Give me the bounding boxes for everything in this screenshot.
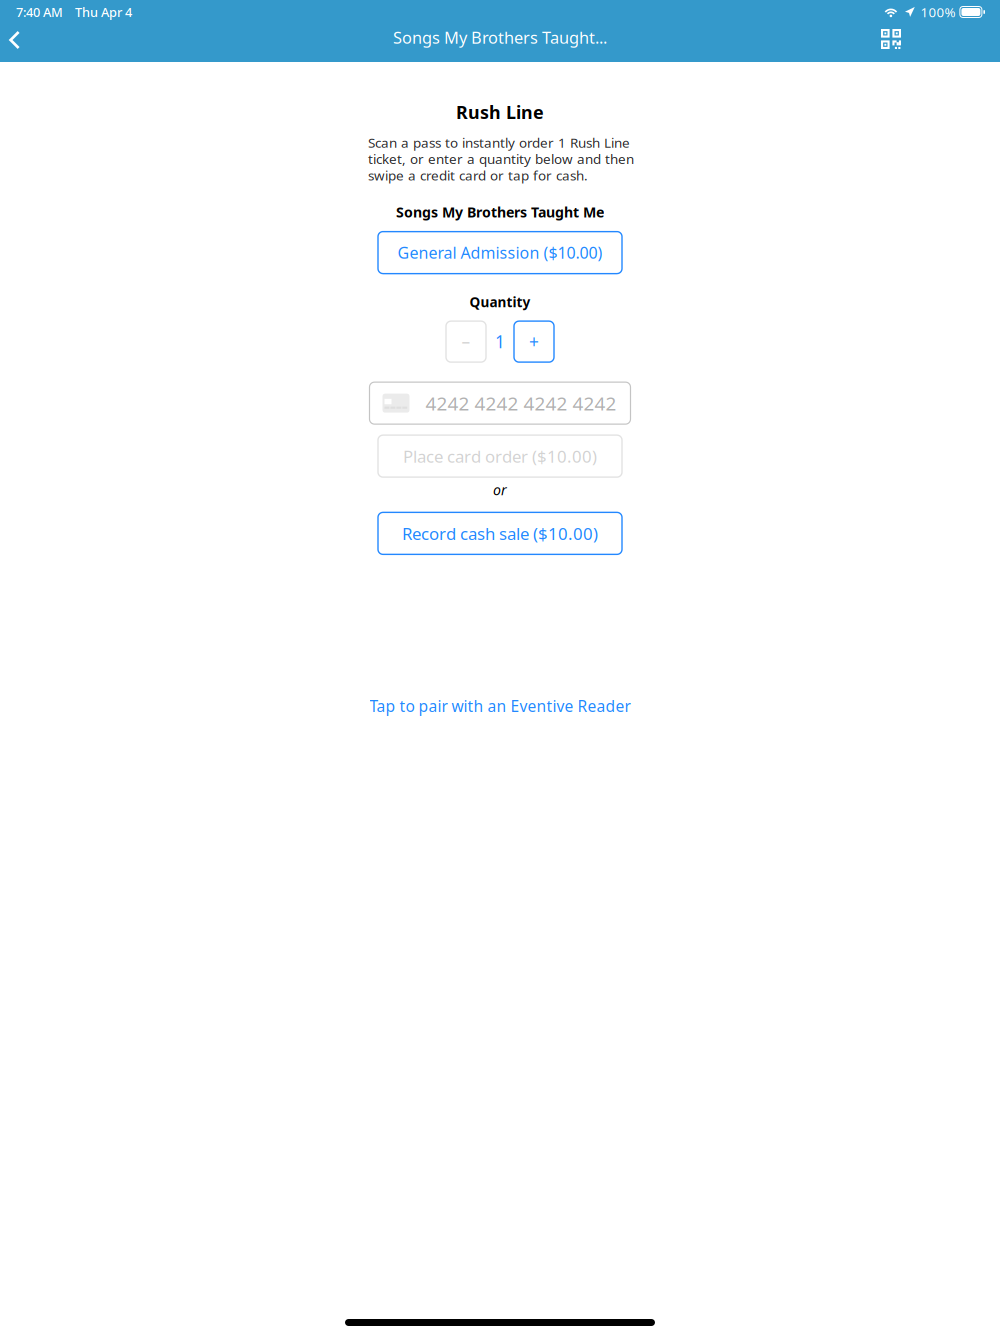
staticText: Record cash sale ($10.00) [402,522,598,545]
staticText: 7:40 AM [16,3,63,21]
button[interactable]: Decrease quantity [446,321,486,362]
staticText: 1 [495,330,505,353]
staticText: – [461,330,470,353]
button[interactable]: Place card order ($10.00) [378,435,622,477]
button[interactable]: Tap to pair with an Eventive Reader [355,687,644,725]
staticText: Place card order ($10.00) [403,445,597,468]
button[interactable]: Scan ticket QR code [867,24,915,62]
staticText: Rush Line [456,100,544,124]
button[interactable]: Record cash sale ($10.00) [378,512,622,554]
staticText: or [493,480,507,499]
button[interactable]: Back [0,24,35,62]
staticText: Tap to pair with an Eventive Reader [369,695,630,717]
staticText: Scan a pass to instantly order 1 Rush Li… [368,133,634,184]
button[interactable]: 4242 4242 4242 4242 [369,382,630,424]
staticText: Songs My Brothers Taught Me [396,202,604,222]
staticText: + [529,330,539,353]
staticText: 4242 4242 4242 4242 [425,390,616,416]
button[interactable]: General Admission ($10.00) [378,232,622,274]
button[interactable]: Increase quantity [514,321,554,362]
staticText: Quantity [469,293,530,311]
staticText: Songs My Brothers Taught... [393,26,607,49]
staticText: 100% [920,3,955,21]
staticText: Thu Apr 4 [75,3,132,21]
staticText: General Admission ($10.00) [397,242,602,263]
